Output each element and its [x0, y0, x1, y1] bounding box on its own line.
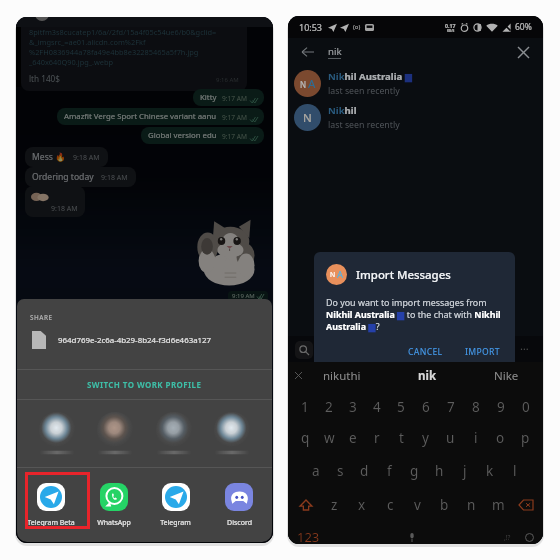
staticText: N [303, 110, 312, 126]
button[interactable]: Telegram Beta [22, 478, 79, 532]
staticText: k [486, 462, 494, 480]
staticText: 1 [301, 398, 309, 416]
button[interactable]: WhatsApp [85, 478, 142, 532]
button[interactable]: r [365, 422, 389, 454]
button[interactable]: e [341, 422, 365, 454]
button[interactable]: z [320, 488, 348, 521]
button[interactable]: n [458, 488, 485, 521]
staticText: y [422, 429, 429, 447]
button[interactable]: 6 [413, 391, 438, 422]
staticText: b [440, 496, 449, 514]
staticText: 8 [472, 398, 480, 416]
button[interactable]: i [463, 422, 488, 454]
staticText: 60% [515, 21, 532, 33]
staticText: … [520, 338, 529, 353]
staticText: ,!? [504, 533, 511, 542]
staticText: d [360, 462, 369, 480]
staticText: 9:17 AM [222, 132, 247, 141]
button[interactable]: 4 [365, 391, 389, 422]
button[interactable]: Backspace [512, 488, 539, 521]
button[interactable]: IMPORT [462, 344, 503, 360]
staticText: f [387, 462, 392, 480]
button[interactable]: x [348, 488, 376, 521]
staticText: 7 [447, 398, 455, 416]
button[interactable]: Discord [210, 478, 267, 532]
button[interactable]: Shift [292, 488, 320, 521]
button[interactable]: a [304, 455, 328, 487]
staticText: _640x640Q90.jpg_.webp [29, 57, 114, 67]
staticText: Telegram [160, 518, 191, 528]
button[interactable]: m [485, 488, 512, 521]
button[interactable]: 9 [488, 391, 513, 422]
button[interactable]: 0 [513, 391, 538, 422]
staticText: 4 [373, 398, 381, 416]
button[interactable]: Back [298, 42, 318, 62]
button[interactable]: j [452, 455, 477, 487]
staticText: m [492, 496, 505, 514]
staticText: o [496, 429, 505, 447]
button[interactable]: v [404, 488, 431, 521]
staticText: 2 [325, 398, 333, 416]
button[interactable]: p [513, 422, 538, 454]
staticText: 8pitfm3s8cucatep1/6a//2fd/15a4f05c54ue6/… [29, 27, 217, 37]
button[interactable]: f [377, 455, 402, 487]
button[interactable]: y [413, 422, 438, 454]
button[interactable]: SWITCH TO WORK PROFILE [17, 370, 272, 399]
button[interactable]: N [288, 100, 543, 134]
button[interactable]: u [438, 422, 463, 454]
button[interactable]: N [288, 66, 543, 100]
button[interactable]: b [431, 488, 458, 521]
staticText: q [301, 429, 310, 447]
button[interactable]: c [376, 488, 404, 521]
button[interactable]: q [293, 422, 317, 454]
staticText: Nike [494, 368, 519, 384]
button[interactable]: 2 [317, 391, 341, 422]
button[interactable]: s [328, 455, 352, 487]
staticText: N [300, 79, 307, 90]
staticText: t [399, 429, 404, 447]
button[interactable]: Clear search [513, 42, 533, 62]
staticText: 6 [422, 398, 430, 416]
staticText: KB/S [447, 29, 455, 33]
button[interactable]: 8 [463, 391, 488, 422]
staticText: Do you want to import messages from Nikh… [326, 296, 503, 332]
staticText: 9 [497, 398, 505, 416]
button[interactable]: t [389, 422, 413, 454]
staticText: Nikhil [328, 104, 357, 117]
button[interactable]: CANCEL [405, 344, 446, 360]
staticText: last seen recently [328, 119, 400, 131]
staticText: SWITCH TO WORK PROFILE [87, 379, 202, 390]
staticText: CANCEL [408, 346, 443, 358]
staticText: e [349, 429, 357, 447]
staticText: Amazfit Verge Sport Chinese variant aanu [64, 111, 217, 122]
staticText: N [330, 270, 336, 279]
button[interactable]: Telegram [147, 478, 204, 532]
button[interactable]: d [352, 455, 377, 487]
button[interactable]: o [488, 422, 513, 454]
button[interactable]: l [502, 455, 527, 487]
staticText: (o) [353, 23, 361, 31]
button[interactable]: w [317, 422, 341, 454]
button[interactable]: h [427, 455, 452, 487]
staticText: a [312, 462, 320, 480]
staticText: A [308, 76, 316, 92]
staticText: 3 [349, 398, 357, 416]
staticText: i [474, 429, 478, 447]
staticText: nik [418, 368, 437, 384]
staticText: Telegram Beta [27, 518, 75, 528]
staticText: n [467, 496, 476, 514]
staticText: v [414, 496, 421, 514]
staticText: Import Messages [356, 267, 451, 283]
button[interactable]: g [402, 455, 427, 487]
button[interactable]: 1 [293, 391, 317, 422]
staticText: 123 [297, 528, 320, 544]
staticText: %2FH0836944a78fa49e4bb8e32285465a5f7h.jp… [29, 47, 199, 57]
button[interactable]: 7 [438, 391, 463, 422]
button[interactable]: 5 [389, 391, 413, 422]
staticText: 0 [522, 398, 530, 416]
staticText: IMPORT [465, 346, 500, 358]
button[interactable]: k [477, 455, 502, 487]
button[interactable]: 3 [341, 391, 365, 422]
staticText: nikuthi [323, 368, 361, 384]
staticText: lth 140$ [29, 73, 60, 84]
